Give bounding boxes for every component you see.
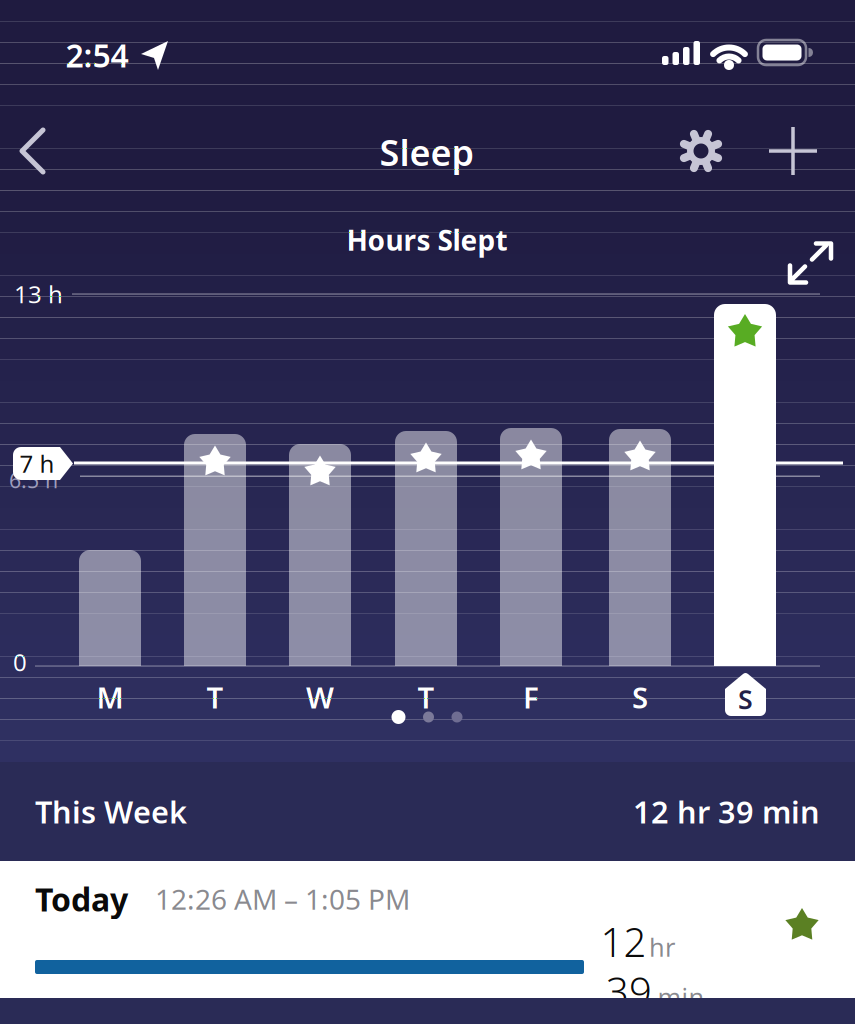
staticText: S [632,677,648,716]
staticText: S [738,681,753,717]
staticText: 6.5 h [9,466,58,494]
button[interactable] [767,126,819,176]
button[interactable]: Today [0,861,855,998]
staticText: 13 h [14,278,63,310]
staticText: 12 [600,915,646,968]
button[interactable] [379,702,474,732]
staticText: 12:26 AM – 1:05 PM [155,880,410,918]
staticText: min [657,980,704,1014]
staticText: 0 [13,646,27,678]
staticText: F [523,677,539,716]
staticText: 39 [606,964,652,1017]
button[interactable] [675,125,727,177]
staticText: Hours Slept [346,221,507,259]
staticText: 2:54 [65,34,128,76]
staticText: 12 hr 39 min [633,791,820,832]
staticText: T [206,677,223,716]
staticText: Today [35,878,128,920]
staticText: Sleep [379,128,474,176]
staticText: hr [649,930,675,964]
staticText: 7 h [19,448,54,479]
staticText: M [96,677,123,716]
staticText: This Week [35,791,187,832]
button[interactable] [789,239,833,289]
staticText: T [417,677,434,716]
staticText: W [306,677,334,716]
button[interactable] [10,125,56,177]
